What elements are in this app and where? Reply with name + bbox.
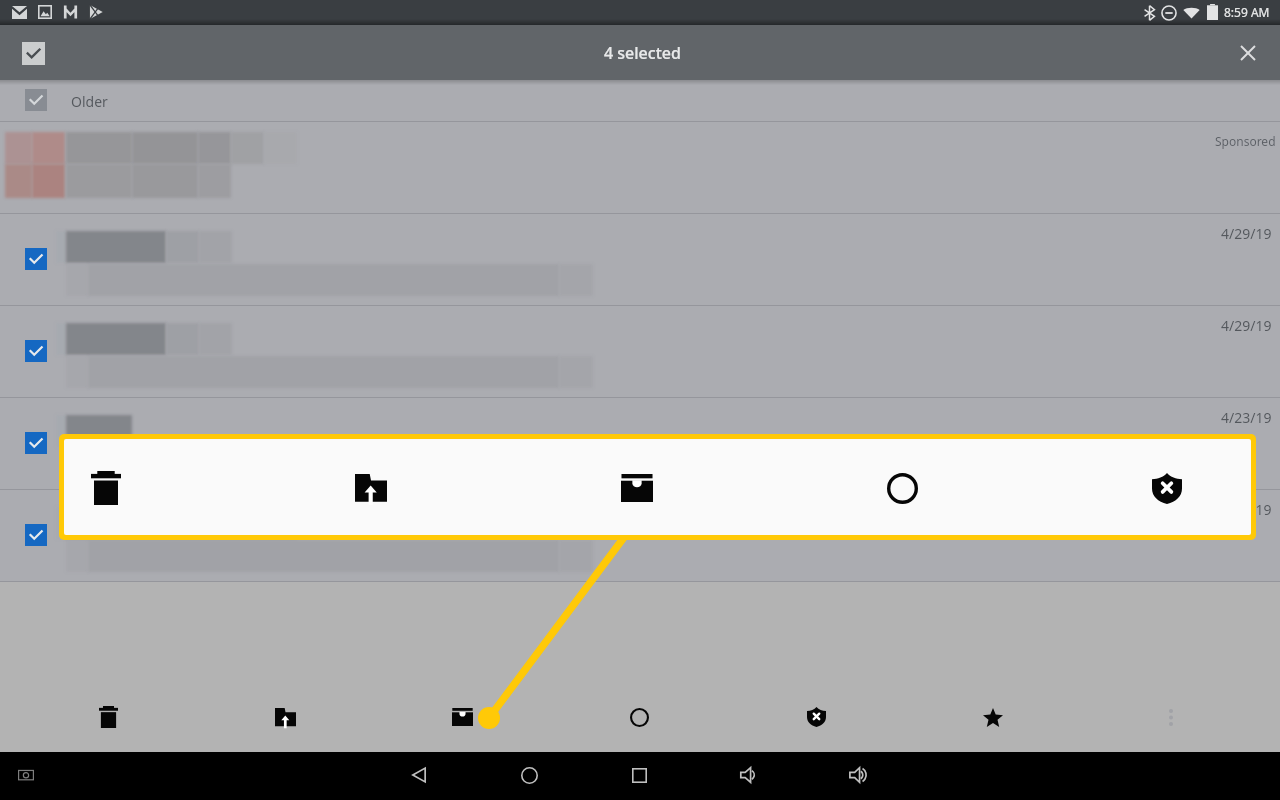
button[interactable]: Archive	[605, 456, 669, 520]
button[interactable]: Report spam	[792, 693, 840, 741]
button[interactable]: Recents	[617, 753, 661, 797]
button[interactable]: Volume down	[728, 753, 772, 797]
staticText: Older	[71, 92, 108, 111]
button[interactable]: Report spam	[1135, 456, 1199, 520]
button[interactable]	[0, 80, 1280, 121]
staticText: Sponsored	[1215, 133, 1276, 149]
button[interactable]: Close selection	[1226, 31, 1270, 75]
staticText: 4/29/19	[1221, 224, 1272, 243]
button[interactable]	[0, 305, 1280, 397]
button[interactable]: Home	[507, 753, 551, 797]
button[interactable]	[0, 489, 1280, 581]
staticText: 4/23/19	[1221, 500, 1272, 519]
staticText: 4 selected	[604, 42, 681, 64]
button[interactable]: Back	[397, 753, 441, 797]
button[interactable]: Star	[969, 693, 1017, 741]
staticText: 4/29/19	[1221, 316, 1272, 335]
button[interactable]: Mark unread	[615, 693, 663, 741]
button[interactable]: Select all	[11, 31, 55, 75]
button[interactable]: Move to folder	[261, 693, 309, 741]
button[interactable]: Volume up	[838, 753, 882, 797]
button[interactable]: Archive	[438, 693, 486, 741]
staticText: 4/23/19	[1221, 408, 1272, 427]
button[interactable]: Delete	[74, 456, 138, 520]
button[interactable]: Mark unread	[870, 456, 934, 520]
button[interactable]	[0, 397, 1280, 489]
button[interactable]	[0, 121, 1280, 213]
button[interactable]: Move to folder	[339, 456, 403, 520]
button[interactable]	[0, 213, 1280, 305]
button[interactable]: Delete	[84, 693, 132, 741]
staticText: 8:59 AM	[1224, 4, 1270, 20]
